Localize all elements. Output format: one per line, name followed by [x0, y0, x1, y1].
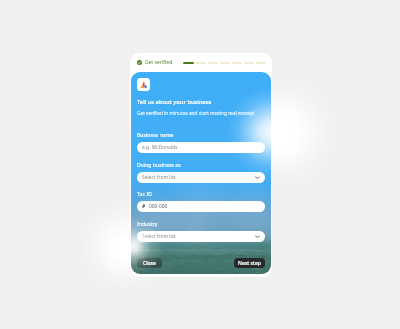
staticText: e.g. McDonalds [142, 144, 178, 151]
button[interactable]: Close [137, 258, 162, 268]
staticText: Doing business as [137, 161, 181, 168]
staticText: Select from list [142, 174, 176, 181]
button[interactable]: Select from list [137, 231, 265, 242]
staticText: 000-000 [149, 203, 168, 210]
staticText: Business name [137, 131, 174, 138]
button[interactable]: e.g. McDonalds [137, 142, 265, 153]
staticText: Get verified [145, 59, 173, 66]
staticText: # [142, 203, 146, 210]
button[interactable]: # [137, 201, 265, 212]
staticText: Tax ID [137, 190, 152, 197]
staticText: Tell us about your business [137, 98, 212, 106]
staticText: Next step [238, 260, 261, 267]
button[interactable]: Select from list [137, 172, 265, 183]
staticText: Industry [137, 220, 158, 227]
staticText: Close [143, 260, 156, 267]
button[interactable]: Next step [234, 258, 265, 268]
staticText: Select from list [142, 233, 176, 240]
staticText: Get verified in minutes and start moving… [137, 110, 255, 116]
